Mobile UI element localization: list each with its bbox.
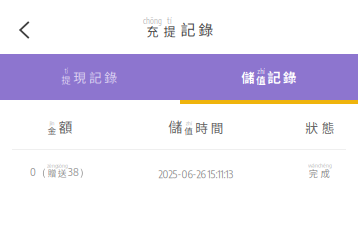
staticText: tí [167,16,172,26]
staticText: 2025-06-26 15:11:13 [158,167,233,181]
button[interactable]: Back [1,7,47,53]
staticText: chōng [143,16,162,26]
staticText: 完 [308,166,317,180]
button[interactable]: 儲 [179,54,358,100]
staticText: 提 [61,73,70,86]
staticText: wán [308,161,318,169]
staticText: 記錄 [180,18,213,40]
staticText: 狀態 [305,118,335,137]
staticText: zhí [257,67,264,75]
staticText: 0（ [30,165,47,179]
staticText: zèng [47,161,58,169]
staticText: sòng [57,161,68,169]
staticText: 充 [146,22,158,40]
staticText: 提 [163,22,175,40]
staticText: 時間 [195,118,224,137]
staticText: 額 [58,116,72,137]
staticText: 值 [256,73,265,87]
staticText: 贈 [48,166,57,179]
staticText: chéng [318,161,332,169]
staticText: 記錄 [267,67,296,87]
staticText: 現記錄 [73,68,117,86]
staticText: 38） [68,165,90,179]
staticText: 儲 [168,116,182,137]
staticText: 值 [184,124,193,137]
staticText: jīn [49,119,54,127]
staticText: tí [64,67,67,75]
button[interactable]: 提 [0,54,179,100]
staticText: 成 [320,166,329,180]
staticText: 儲 [241,67,254,87]
staticText: zhí [186,119,192,127]
staticText: 送 [58,166,67,179]
staticText: 金 [47,124,56,137]
